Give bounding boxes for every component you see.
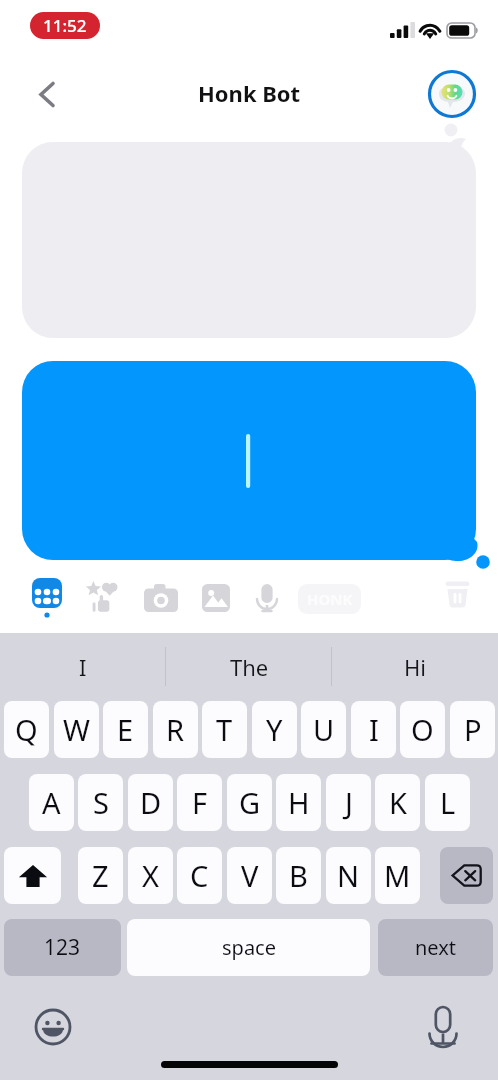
button[interactable]: X [128, 847, 173, 904]
button[interactable]: B [276, 847, 321, 904]
staticText: I [369, 710, 379, 749]
staticText: R [166, 710, 185, 749]
staticText: Z [92, 856, 109, 895]
staticText: I [79, 652, 87, 682]
button[interactable]: space [127, 919, 370, 976]
button[interactable]: H [276, 774, 321, 831]
staticText: Hi [404, 652, 426, 682]
staticText: Y [266, 710, 283, 749]
staticText: G [239, 783, 261, 822]
staticText: E [117, 710, 134, 749]
button[interactable]: next [378, 919, 493, 976]
button[interactable]: N [326, 847, 371, 904]
button[interactable]: F [177, 774, 222, 831]
staticText: space [222, 934, 276, 961]
button[interactable]: Hi [332, 634, 498, 699]
button[interactable]: Q [4, 701, 49, 758]
button[interactable]: W [54, 701, 99, 758]
button[interactable]: M [375, 847, 420, 904]
button[interactable]: Backspace [440, 847, 493, 904]
button[interactable]: K [375, 774, 420, 831]
button[interactable]: C [177, 847, 222, 904]
staticText: O [411, 710, 434, 749]
staticText: F [192, 783, 208, 822]
button[interactable]: S [78, 774, 123, 831]
button[interactable]: Emoji [29, 1003, 77, 1051]
staticText: W [63, 710, 90, 749]
button[interactable]: I [351, 701, 396, 758]
button[interactable]: V [227, 847, 272, 904]
button[interactable]: U [301, 701, 346, 758]
staticText: The [230, 652, 269, 682]
button[interactable]: Camera [137, 574, 185, 622]
button[interactable]: Shift [4, 847, 61, 904]
button[interactable]: Delete [435, 571, 483, 619]
button[interactable]: The [166, 634, 332, 699]
staticText: X [142, 856, 159, 895]
button[interactable]: T [202, 701, 247, 758]
staticText: 11:52 [43, 14, 87, 37]
button[interactable]: I [0, 634, 166, 699]
button[interactable]: E [103, 701, 148, 758]
button[interactable]: Back [24, 77, 68, 121]
staticText: L [440, 783, 456, 822]
staticText: K [389, 783, 407, 822]
staticText: P [464, 710, 482, 749]
staticText: U [313, 710, 335, 749]
staticText: C [190, 856, 209, 895]
staticText: A [42, 783, 61, 822]
staticText: M [384, 856, 411, 895]
button[interactable]: Dictation [419, 1002, 467, 1050]
button[interactable]: Z [78, 847, 123, 904]
button[interactable]: D [128, 774, 173, 831]
button[interactable]: O [400, 701, 445, 758]
staticText: S [93, 783, 109, 822]
staticText: D [140, 783, 162, 822]
button[interactable]: Contact info [426, 68, 478, 120]
staticText: H [288, 783, 310, 822]
button[interactable]: P [450, 701, 495, 758]
staticText: V [241, 856, 259, 895]
button[interactable]: Photos [192, 574, 240, 622]
button[interactable]: L [425, 774, 470, 831]
button[interactable]: 123 [4, 919, 121, 976]
staticText: T [216, 710, 233, 749]
button[interactable]: Y [252, 701, 297, 758]
staticText: 123 [44, 933, 81, 962]
staticText: next [415, 934, 457, 961]
staticText: J [345, 783, 353, 822]
button[interactable]: G [227, 774, 272, 831]
button[interactable]: Keyboard [23, 571, 71, 619]
staticText: Honk Bot [198, 78, 301, 108]
button[interactable]: Stickers [77, 574, 125, 622]
button[interactable]: A [29, 774, 74, 831]
button[interactable]: R [153, 701, 198, 758]
staticText: B [289, 856, 308, 895]
staticText: N [337, 856, 360, 895]
button[interactable]: J [326, 774, 371, 831]
staticText: Q [15, 710, 38, 749]
button[interactable]: Audio message [243, 574, 291, 622]
